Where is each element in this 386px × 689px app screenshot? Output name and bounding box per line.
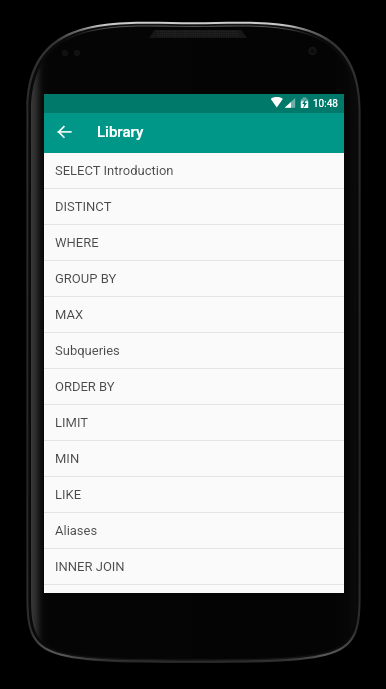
button[interactable]: SELECT Introduction [44,153,344,189]
staticText: Library [97,123,144,141]
button[interactable]: Aliases [44,513,344,549]
button[interactable]: ORDER BY [44,369,344,405]
staticText: DISTINCT [55,199,112,214]
button[interactable]: MAX [44,297,344,333]
staticText: Subqueries [55,343,120,358]
staticText: WHERE [55,235,99,250]
staticText: ORDER BY [55,379,115,394]
staticText: SELECT Introduction [55,163,174,178]
button[interactable]: LIKE [44,477,344,513]
staticText: 10:48 [313,98,338,110]
staticText: INNER JOIN [55,559,125,574]
button[interactable]: WHERE [44,225,344,261]
button[interactable]: LIMIT [44,405,344,441]
staticText: MAX [55,307,84,322]
staticText: MIN [55,451,80,466]
staticText: Aliases [55,523,98,538]
button[interactable]: GROUP BY [44,261,344,297]
button[interactable]: Navigate up [44,113,85,153]
staticText: GROUP BY [55,271,117,286]
staticText: LIKE [55,487,82,502]
button[interactable]: Subqueries [44,333,344,369]
button[interactable]: INNER JOIN [44,549,344,585]
button[interactable]: MIN [44,441,344,477]
button[interactable]: DISTINCT [44,189,344,225]
staticText: LIMIT [55,415,88,430]
